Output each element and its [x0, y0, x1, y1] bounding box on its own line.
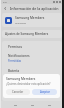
button[interactable]: Permisos — [4, 43, 60, 51]
staticText: Almacenamiento — [8, 84, 34, 88]
button[interactable]: Back — [3, 6, 8, 11]
button[interactable]: Almacenamiento — [4, 82, 60, 95]
staticText: Samsung Members — [15, 16, 45, 20]
button[interactable]: Notificaciones — [4, 52, 60, 65]
staticText: 0,00 B usados — [8, 89, 25, 93]
button[interactable]: Nav — [30, 103, 34, 107]
staticText: Instalada — [15, 21, 26, 24]
button[interactable]: Samsung Members — [2, 13, 62, 27]
staticText: Ajustes de Samsung Members — [5, 32, 49, 36]
button[interactable]: Aceptar — [32, 89, 57, 95]
button[interactable]: Batería — [4, 67, 60, 80]
staticText: Notificaciones — [8, 54, 30, 58]
staticText: Batería — [8, 69, 19, 73]
button[interactable]: Nav — [47, 103, 51, 107]
button[interactable]: Cancelar — [6, 89, 30, 95]
staticText: Información de la aplicación — [10, 6, 59, 11]
button[interactable]: Ajustes de Samsung Members — [2, 30, 62, 38]
staticText: Permitidas — [8, 59, 22, 63]
staticText: ¿Quieres desinstalar esta aplicación? — [6, 82, 51, 86]
staticText: Aceptar — [40, 90, 50, 94]
staticText: Permisos — [8, 45, 23, 49]
staticText: Cancelar — [12, 90, 24, 94]
button[interactable]: Mostrar encima de otras apps — [4, 96, 60, 99]
staticText: 9:41 — [3, 1, 8, 4]
staticText: Sin restricción — [8, 74, 26, 78]
button[interactable]: Nav — [13, 103, 17, 107]
staticText: Samsung Members — [6, 77, 36, 81]
